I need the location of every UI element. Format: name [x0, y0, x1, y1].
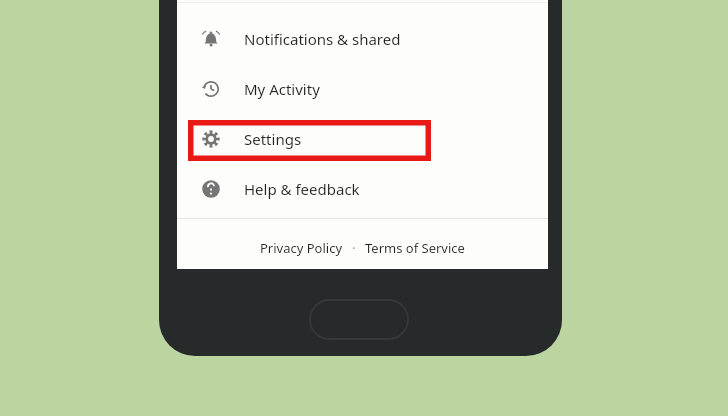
- other: Settings: [201, 129, 221, 149]
- button[interactable]: Help and feedback: [177, 165, 548, 213]
- button[interactable]: Privacy Policy: [257, 235, 346, 261]
- button[interactable]: Settings: [177, 115, 548, 163]
- button[interactable]: My Activity: [177, 65, 548, 113]
- staticText: Settings: [244, 129, 302, 149]
- staticText: My Activity: [244, 79, 320, 99]
- other: Notifications: [201, 29, 221, 49]
- staticText: ·: [352, 239, 356, 257]
- other: My Activity: [201, 79, 221, 99]
- other: Help and feedback: [201, 179, 221, 199]
- button[interactable]: Terms of Service: [362, 235, 468, 261]
- staticText: Privacy Policy: [260, 239, 343, 257]
- staticText: Notifications & shared: [244, 29, 401, 49]
- staticText: Help & feedback: [244, 179, 360, 199]
- button[interactable]: Notifications: [177, 15, 548, 63]
- staticText: Terms of Service: [365, 239, 465, 257]
